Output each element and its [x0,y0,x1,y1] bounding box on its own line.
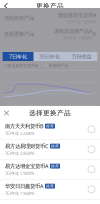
button[interactable]: 南方天天利货币B [0,119,100,139]
staticText: 南方天天利货币B [5,123,43,130]
staticText: 建信嘉薪宝货币A [58,12,96,19]
staticText: 易方达增金宝货币A [5,163,48,170]
staticText: 7日年化 1.6930% [67,19,96,24]
staticText: 推荐 [51,164,59,168]
staticText: 请稍后选择产品A [54,28,92,35]
staticText: 请选择产品 [49,63,69,68]
staticText: 7日年化 1.9920% [5,171,34,176]
staticText: 7日年化 2.2340% [5,131,34,136]
staticText: 7日年化 2.0630% [5,151,34,156]
button[interactable]: 易方达增金宝货币A [0,159,100,179]
button[interactable]: Close [0,106,13,119]
staticText: 易方达易理财货币C [5,143,48,150]
staticText: 当前持有产品 [4,15,34,21]
staticText: 建信嘉薪宝货币A [7,63,38,68]
staticText: 7日年化 1.8000% [63,35,92,40]
button[interactable]: 易方达易理财货币C [0,139,100,159]
staticText: 推荐 [51,144,59,148]
staticText: 推荐 [46,184,54,188]
staticText: 选择更换产品 [4,31,34,37]
staticText: 7日年化 [9,53,27,60]
button[interactable]: 华安日日鑫货币A [0,179,100,199]
staticText: 更换产品 [36,2,64,10]
staticText: 选择更换产品 [29,109,71,117]
staticText: 华安日日鑫货币A [5,183,43,190]
staticText: 30日年化 [39,53,60,60]
staticText: 万份收益 [71,53,91,60]
staticText: 7日年化 1.9540% [5,191,34,196]
button[interactable]: Back [0,0,12,12]
staticText: 推荐 [46,124,54,128]
